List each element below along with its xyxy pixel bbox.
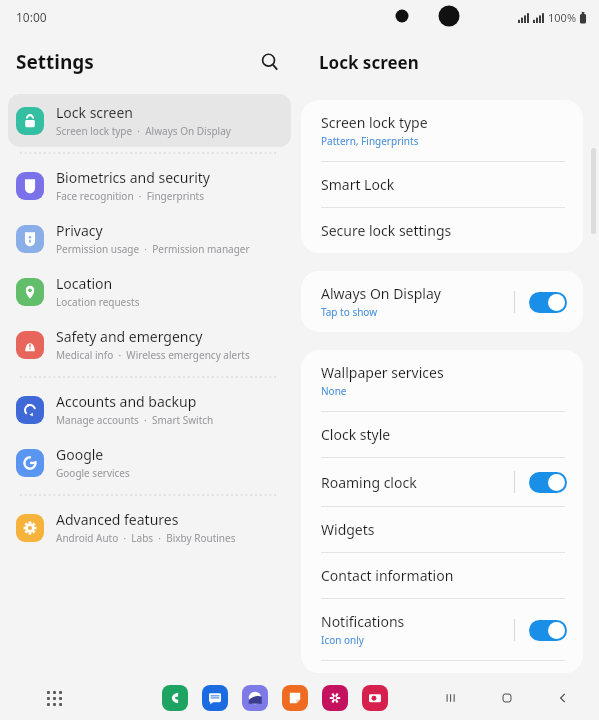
button[interactable]: Clock style <box>301 412 583 458</box>
staticText: Settings <box>16 49 94 75</box>
staticText: Notifications <box>321 612 405 631</box>
staticText: Advanced features <box>56 510 179 529</box>
staticText: Location <box>56 274 113 293</box>
staticText: Widgets <box>321 520 375 539</box>
staticText: Permission usage · Permission manager <box>56 242 250 256</box>
button[interactable]: Search <box>253 45 287 79</box>
staticText: Android Auto · Labs · Bixby Routines <box>56 531 236 545</box>
button[interactable]: Roaming clock <box>301 458 583 507</box>
staticText: Contact information <box>321 566 454 585</box>
button[interactable]: Toggle on <box>529 472 567 493</box>
staticText: Tap to show <box>321 305 378 319</box>
button[interactable]: Internet <box>242 685 268 711</box>
staticText: 100% <box>548 10 577 25</box>
staticText: None <box>321 384 347 398</box>
staticText: Google <box>56 445 104 464</box>
button[interactable]: Always On Display <box>301 271 583 332</box>
button[interactable]: Screen lock type <box>301 100 583 162</box>
button[interactable]: Back <box>549 684 577 712</box>
staticText: Smart Lock <box>321 175 395 194</box>
button[interactable]: Privacy <box>8 212 291 265</box>
button[interactable]: Safety and emergency <box>8 318 291 371</box>
button[interactable]: Phone <box>162 685 188 711</box>
staticText: Pattern, Fingerprints <box>321 134 419 148</box>
staticText: Clock style <box>321 425 391 444</box>
button[interactable]: Secure lock settings <box>301 208 583 253</box>
staticText: 10:00 <box>16 9 47 25</box>
staticText: Always On Display <box>321 284 441 303</box>
button[interactable]: Widgets <box>301 507 583 553</box>
staticText: Screen lock type <box>321 113 428 132</box>
staticText: Privacy <box>56 221 103 240</box>
button[interactable]: Contact information <box>301 553 583 599</box>
button[interactable]: Apps <box>39 683 69 713</box>
staticText: Secure lock settings <box>321 221 452 240</box>
button[interactable]: Location <box>8 265 291 318</box>
staticText: Google services <box>56 466 130 480</box>
button[interactable]: Recents <box>437 684 465 712</box>
staticText: Medical info · Wireless emergency alerts <box>56 348 250 362</box>
button[interactable]: Toggle on <box>529 620 567 641</box>
button[interactable]: Messages <box>202 685 228 711</box>
button[interactable]: Home <box>493 684 521 712</box>
button[interactable]: Notes <box>282 685 308 711</box>
staticText: Lock screen <box>319 51 419 74</box>
button[interactable]: Accounts and backup <box>8 383 291 436</box>
staticText: Icon only <box>321 633 364 647</box>
button[interactable]: Camera <box>362 685 388 711</box>
staticText: Manage accounts · Smart Switch <box>56 413 214 427</box>
staticText: Location requests <box>56 295 140 309</box>
staticText: Biometrics and security <box>56 168 210 187</box>
staticText: Roaming clock <box>321 473 417 492</box>
staticText: Face recognition · Fingerprints <box>56 189 204 203</box>
button[interactable]: Smart Lock <box>301 162 583 208</box>
button[interactable]: Biometrics and security <box>8 159 291 212</box>
staticText: Screen lock type · Always On Display <box>56 124 231 138</box>
staticText: Accounts and backup <box>56 392 197 411</box>
button[interactable]: Google <box>8 436 291 489</box>
button[interactable]: Lock screen <box>8 94 291 147</box>
button[interactable]: Toggle on <box>529 292 567 313</box>
staticText: Safety and emergency <box>56 327 203 346</box>
button[interactable]: Advanced features <box>8 501 291 554</box>
staticText: Lock screen <box>56 103 134 122</box>
button[interactable]: Notifications <box>301 599 583 661</box>
button[interactable]: Gallery <box>322 685 348 711</box>
button[interactable]: Wallpaper services <box>301 350 583 412</box>
staticText: Wallpaper services <box>321 363 444 382</box>
